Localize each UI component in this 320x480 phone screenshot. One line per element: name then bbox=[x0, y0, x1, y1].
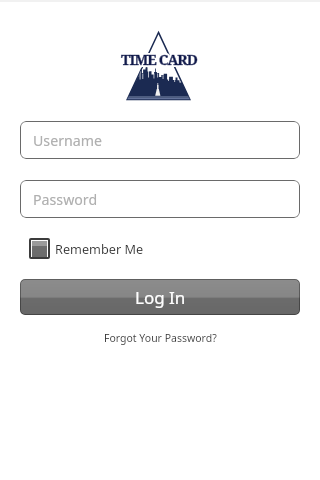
staticText: TIME CARD bbox=[121, 49, 197, 69]
staticText: Password bbox=[33, 190, 98, 209]
button[interactable]: Remember Me bbox=[29, 238, 144, 259]
button[interactable]: Username bbox=[20, 121, 300, 159]
staticText: Remember Me bbox=[55, 240, 144, 257]
staticText: Log In bbox=[135, 286, 186, 309]
button[interactable]: Password bbox=[20, 180, 300, 218]
button[interactable]: Forgot Your Password? bbox=[104, 331, 217, 345]
staticText: TIME CARD bbox=[121, 49, 197, 69]
staticText: TIME CARD bbox=[121, 49, 197, 69]
staticText: Username bbox=[33, 131, 103, 150]
button[interactable]: Log In bbox=[20, 279, 300, 315]
